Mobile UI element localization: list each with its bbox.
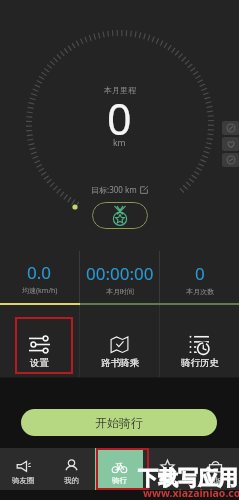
staticText: 本月时间 (106, 287, 134, 296)
staticText: 00:00:00 (86, 262, 154, 285)
button[interactable]: 0.0 (0, 251, 79, 306)
button[interactable]: 排行 (143, 448, 191, 490)
staticText: 0.0 (27, 261, 52, 284)
staticText: km (113, 137, 126, 149)
staticText: 目标:300 km (91, 184, 137, 195)
staticText: 0 (107, 89, 132, 148)
staticText: 骑行 (112, 476, 127, 485)
staticText: 0 (195, 262, 205, 285)
button[interactable]: Achievements (92, 202, 148, 229)
button[interactable]: 00:00:00 (80, 251, 159, 306)
button[interactable]: 我的 (47, 448, 95, 490)
staticText: 骑友圈 (12, 476, 35, 485)
staticText: 商城 (208, 476, 223, 485)
staticText: 本月次数 (186, 287, 214, 296)
staticText: 开始骑行 (95, 415, 143, 430)
staticText: 本月里程 (104, 85, 136, 95)
button[interactable]: Quick action (222, 137, 239, 151)
button[interactable]: 路书骑乘 (80, 306, 159, 377)
staticText: 设置 (30, 357, 49, 369)
staticText: www.xiazainiao.com (143, 486, 239, 500)
staticText: 排行 (160, 476, 175, 485)
button[interactable]: 目标:300 km (91, 184, 148, 195)
button[interactable]: 骑友圈 (0, 448, 47, 490)
button[interactable]: 骑行 (95, 448, 143, 490)
staticText: 下载写应用 (138, 466, 238, 491)
staticText: 骑行历史 (181, 357, 219, 369)
button[interactable]: 0 (160, 251, 239, 306)
staticText: 路书骑乘 (101, 357, 139, 369)
button[interactable]: 骑行历史 (160, 306, 239, 377)
button[interactable]: 设置 (0, 306, 79, 377)
button[interactable]: Quick action (222, 153, 239, 167)
button[interactable]: Quick action (222, 121, 239, 135)
staticText: 我的 (64, 476, 79, 485)
staticText: 均速(km/h) (22, 286, 58, 296)
button[interactable]: 商城 (191, 448, 239, 490)
button[interactable]: 开始骑行 (21, 409, 217, 436)
